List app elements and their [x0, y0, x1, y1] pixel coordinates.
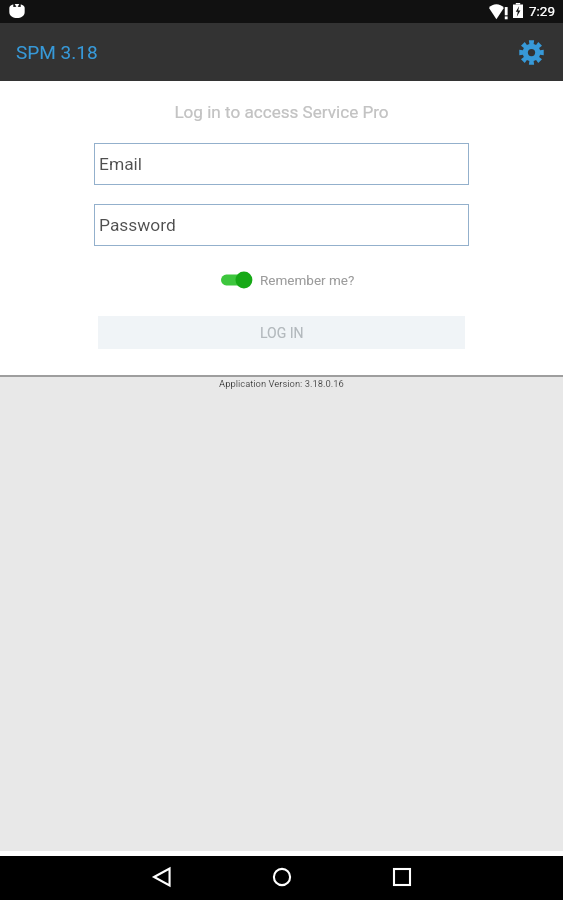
staticText: Remember me?	[260, 272, 355, 288]
button[interactable]: Settings	[511, 32, 551, 72]
button[interactable]: Password	[94, 204, 469, 246]
staticText: Application Version: 3.18.0.16	[219, 378, 344, 389]
button[interactable]: Remember me?	[221, 269, 355, 291]
staticText: SPM 3.18	[16, 41, 98, 63]
button[interactable]: Email	[94, 143, 469, 185]
staticText: LOG IN	[260, 325, 304, 341]
button[interactable]: Home	[254, 855, 310, 899]
staticText: 7:29	[529, 3, 556, 19]
button[interactable]: LOG IN	[98, 316, 465, 349]
button[interactable]: Back	[134, 855, 190, 899]
staticText: Email	[99, 154, 143, 174]
button[interactable]: Recents	[374, 855, 430, 899]
staticText: Log in to access Service Pro	[0, 102, 563, 122]
staticText: Password	[99, 215, 176, 235]
